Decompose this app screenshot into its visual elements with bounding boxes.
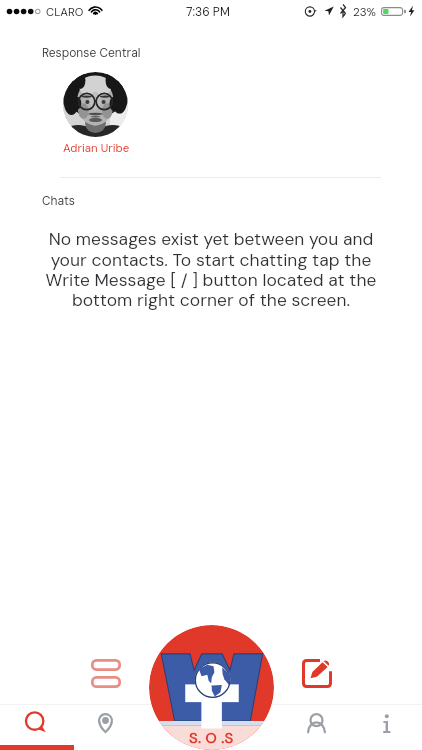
staticText: S. O .S (189, 728, 234, 748)
button[interactable]: Write message (295, 651, 339, 695)
button[interactable]: SOS emergency (149, 625, 274, 750)
button[interactable]: Map (83, 701, 127, 745)
staticText: Chats (42, 193, 75, 209)
staticText: Response Central (42, 45, 141, 61)
staticText: 23% (353, 5, 376, 20)
button[interactable]: Adrian Uribe (63, 72, 128, 137)
staticText: Adrian Uribe (63, 141, 130, 156)
staticText: 7:36 PM (186, 4, 230, 20)
button[interactable]: Chats (13, 700, 57, 744)
button[interactable]: Contacts list (84, 651, 128, 695)
staticText: CLARO (46, 5, 84, 20)
staticText: No messages exist yet between you and yo… (43, 228, 379, 311)
button[interactable]: Info (364, 701, 408, 745)
button[interactable]: Profile (294, 701, 338, 745)
